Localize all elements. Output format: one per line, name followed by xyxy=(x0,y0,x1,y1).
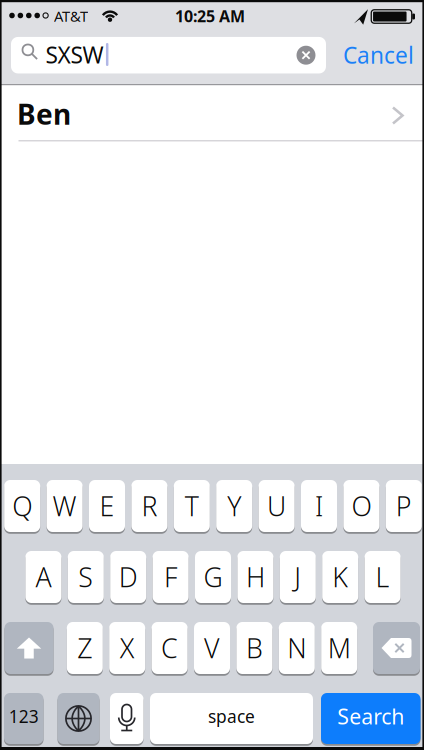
staticText: X xyxy=(120,630,135,666)
button[interactable] xyxy=(110,693,143,744)
button[interactable]: 123 xyxy=(4,693,43,744)
button[interactable]: K xyxy=(322,551,358,603)
staticText: E xyxy=(99,488,114,524)
staticText: A xyxy=(35,559,51,595)
staticText: T xyxy=(185,488,199,524)
button[interactable]: N xyxy=(279,622,315,674)
staticText: 123 xyxy=(9,705,39,728)
button[interactable]: D xyxy=(110,551,146,603)
button[interactable] xyxy=(11,37,326,73)
staticText: Z xyxy=(77,630,92,666)
button[interactable]: W xyxy=(47,480,83,532)
button[interactable]: Ben xyxy=(0,85,424,141)
button[interactable]: L xyxy=(365,551,401,603)
staticText: O xyxy=(351,488,371,524)
button[interactable] xyxy=(373,622,420,674)
staticText: Ben xyxy=(17,95,71,133)
button[interactable]: V xyxy=(194,622,230,674)
staticText: J xyxy=(294,559,301,595)
staticText: M xyxy=(328,630,351,666)
staticText: L xyxy=(376,559,390,595)
staticText: P xyxy=(396,488,412,524)
staticText: K xyxy=(332,559,348,595)
button[interactable]: T xyxy=(174,480,210,532)
staticText: Q xyxy=(12,488,32,524)
staticText: space xyxy=(208,705,255,728)
staticText: Search xyxy=(337,702,404,730)
button[interactable]: Y xyxy=(216,480,252,532)
button[interactable]: A xyxy=(25,551,61,603)
staticText: I xyxy=(315,488,323,524)
button[interactable]: H xyxy=(237,551,273,603)
staticText: F xyxy=(164,559,177,595)
button[interactable] xyxy=(4,622,53,674)
button[interactable]: Search xyxy=(321,693,420,744)
button[interactable]: R xyxy=(131,480,167,532)
staticText: R xyxy=(141,488,157,524)
button[interactable]: G xyxy=(195,551,231,603)
button[interactable]: space xyxy=(150,693,313,744)
staticText: U xyxy=(267,488,286,524)
button[interactable] xyxy=(296,46,315,65)
staticText: C xyxy=(161,630,178,666)
button[interactable]: X xyxy=(109,622,145,674)
button[interactable]: I xyxy=(301,480,337,532)
staticText: Cancel xyxy=(343,40,414,70)
staticText: S xyxy=(78,559,93,595)
button[interactable]: S xyxy=(68,551,104,603)
staticText: B xyxy=(246,630,263,666)
button[interactable]: M xyxy=(321,622,357,674)
staticText: 10:25 AM xyxy=(175,5,245,27)
staticText: H xyxy=(246,559,265,595)
staticText: AT&T xyxy=(54,6,88,26)
button[interactable]: P xyxy=(386,480,422,532)
staticText: Y xyxy=(227,488,241,524)
button[interactable] xyxy=(57,693,99,744)
button[interactable]: Q xyxy=(4,480,40,532)
button[interactable]: U xyxy=(259,480,295,532)
button[interactable]: J xyxy=(280,551,316,603)
staticText: G xyxy=(203,559,222,595)
staticText: D xyxy=(119,559,138,595)
button[interactable]: Z xyxy=(67,622,103,674)
button[interactable]: O xyxy=(343,480,379,532)
button[interactable]: E xyxy=(89,480,125,532)
button[interactable]: Cancel xyxy=(343,40,414,70)
staticText: SXSW xyxy=(45,40,103,70)
staticText: W xyxy=(53,488,77,524)
button[interactable]: F xyxy=(153,551,189,603)
button[interactable]: B xyxy=(236,622,272,674)
staticText: N xyxy=(287,630,306,666)
staticText: V xyxy=(204,630,220,666)
button[interactable]: C xyxy=(152,622,188,674)
